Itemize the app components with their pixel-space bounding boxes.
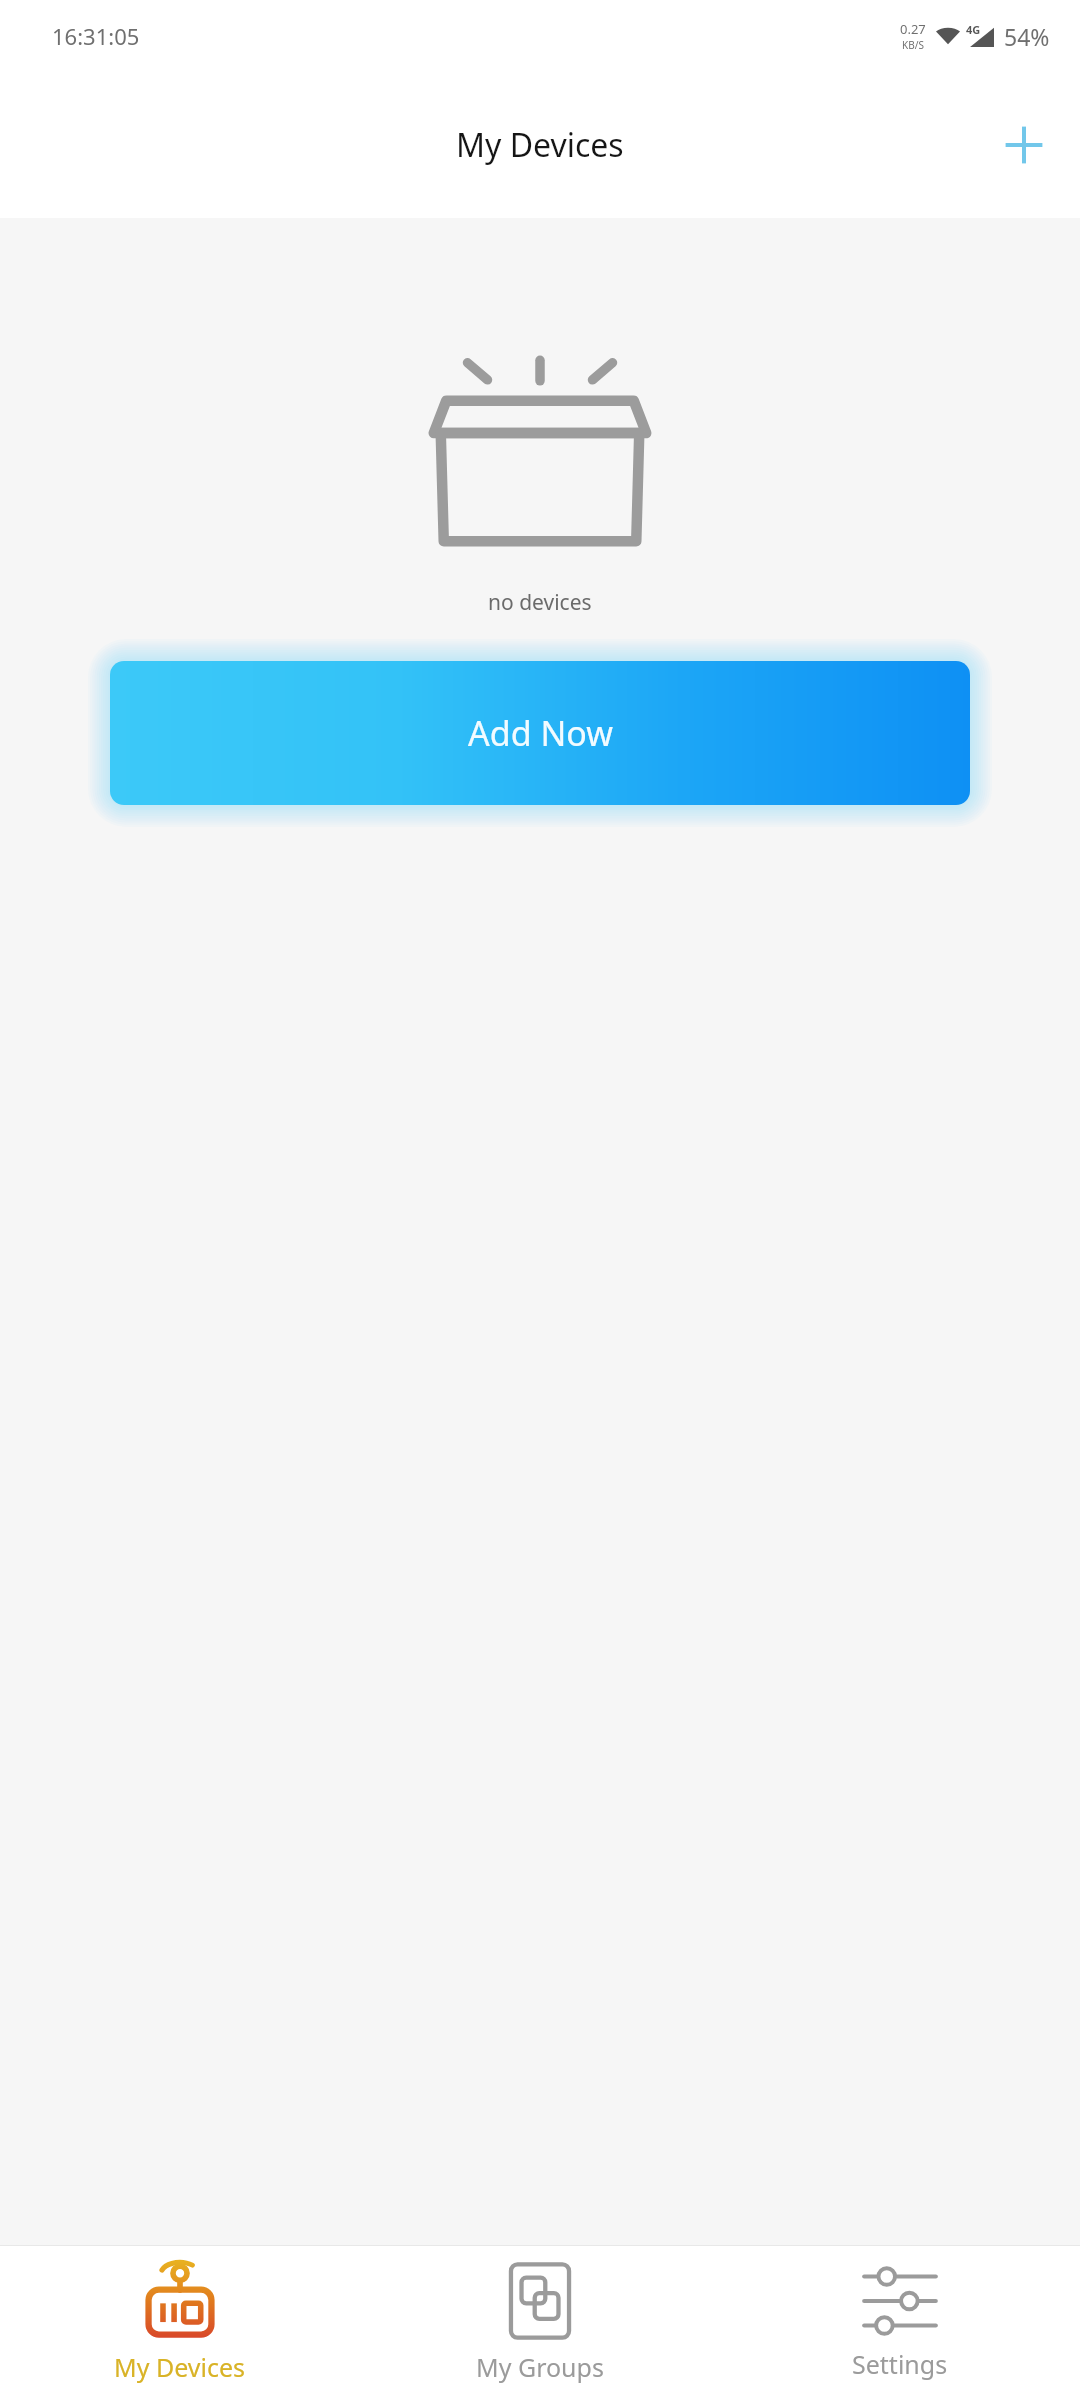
button[interactable]: Add device bbox=[988, 109, 1060, 181]
staticText: My Devices bbox=[114, 2350, 246, 2384]
staticText: Settings bbox=[852, 2347, 948, 2381]
staticText: 54% bbox=[1004, 21, 1050, 52]
staticText: no devices bbox=[488, 588, 592, 617]
staticText: My Devices bbox=[456, 123, 624, 167]
staticText: KB/S bbox=[902, 38, 924, 52]
staticText: 16:31:05 bbox=[52, 21, 140, 51]
button[interactable]: My Groups bbox=[360, 2246, 720, 2400]
staticText: 0.27 bbox=[900, 20, 926, 38]
staticText: My Groups bbox=[476, 2350, 604, 2384]
staticText: Add Now bbox=[468, 710, 613, 756]
button[interactable]: My Devices bbox=[0, 2246, 360, 2400]
button[interactable]: Settings bbox=[720, 2246, 1080, 2400]
staticText: 4G bbox=[966, 22, 981, 37]
button[interactable]: Add Now bbox=[110, 661, 970, 805]
